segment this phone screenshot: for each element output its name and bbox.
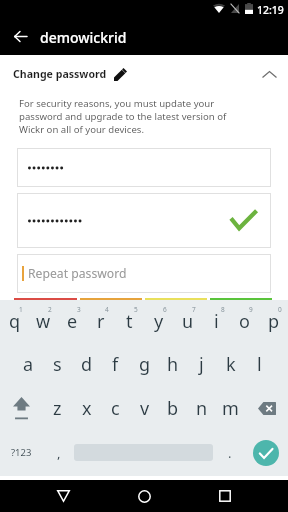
staticText: f [112, 352, 119, 377]
button[interactable]: v [130, 387, 159, 430]
button[interactable]: q [0, 300, 29, 343]
button[interactable] [17, 193, 271, 248]
staticText: 6 [163, 305, 167, 314]
button[interactable]: r [86, 300, 115, 343]
button[interactable]: Collapse section [250, 63, 288, 85]
staticText: i [214, 309, 219, 334]
staticText: r [97, 309, 105, 334]
button[interactable]: t [115, 300, 144, 343]
button[interactable]: a [14, 343, 43, 386]
button[interactable]: Back [3, 19, 37, 53]
staticText: 5 [134, 305, 138, 314]
button[interactable]: d [72, 343, 101, 386]
button[interactable]: l [245, 343, 274, 386]
button[interactable]: y [144, 300, 173, 343]
staticText: t [126, 309, 133, 334]
staticText: s [53, 352, 62, 377]
button[interactable]: o [230, 300, 259, 343]
button[interactable]: h [158, 343, 187, 386]
staticText: o [239, 309, 250, 334]
staticText: h [167, 352, 179, 377]
staticText: . [228, 444, 232, 462]
button[interactable]: Recents [193, 480, 257, 512]
staticText: 2 [48, 305, 52, 314]
button[interactable]: e [58, 300, 87, 343]
staticText: k [226, 352, 236, 377]
staticText: 1 [19, 305, 23, 314]
staticText: e [67, 309, 78, 334]
staticText: 0 [278, 305, 282, 314]
staticText: 12:19 [257, 3, 284, 17]
button[interactable]: ?123 [0, 431, 43, 474]
button[interactable]: f [101, 343, 130, 386]
staticText: Change password [13, 67, 107, 81]
button[interactable]: m [216, 387, 245, 430]
staticText: ?123 [11, 446, 32, 459]
staticText: demowickrid [40, 28, 127, 47]
button[interactable]: Shift [0, 387, 43, 430]
staticText: , [57, 444, 61, 462]
staticText: y [154, 309, 164, 334]
staticText: n [196, 396, 208, 421]
staticText: j [199, 352, 204, 377]
button[interactable]: Change password [0, 63, 288, 85]
staticText: For security reasons, you must update yo… [19, 97, 227, 136]
staticText: a [23, 352, 34, 377]
button[interactable]: j [187, 343, 216, 386]
button[interactable] [17, 148, 271, 187]
staticText: 8 [221, 305, 225, 314]
button[interactable]: x [72, 387, 101, 430]
button[interactable]: k [216, 343, 245, 386]
staticText: Repeat password [28, 265, 127, 282]
staticText: 9 [249, 305, 253, 314]
staticText: d [81, 352, 93, 377]
button[interactable]: i [202, 300, 231, 343]
button[interactable]: c [101, 387, 130, 430]
button[interactable]: z [43, 387, 72, 430]
staticText: u [182, 309, 194, 334]
button[interactable]: , [45, 431, 73, 474]
button[interactable]: n [187, 387, 216, 430]
staticText: 3 [77, 305, 81, 314]
button[interactable]: u [173, 300, 202, 343]
staticText: g [139, 352, 151, 377]
button[interactable]: Enter [253, 440, 279, 466]
button[interactable]: b [158, 387, 187, 430]
staticText: 4 [105, 305, 109, 314]
staticText: w [36, 309, 51, 334]
button[interactable]: Home [112, 480, 176, 512]
staticText: x [82, 396, 92, 421]
button[interactable]: w [29, 300, 58, 343]
button[interactable]: Back [31, 480, 95, 512]
button[interactable]: . [216, 431, 244, 474]
staticText: m [222, 396, 239, 421]
button[interactable]: s [43, 343, 72, 386]
staticText: q [9, 309, 21, 334]
staticText: v [140, 396, 150, 421]
button[interactable]: g [130, 343, 159, 386]
button[interactable]: Repeat password [17, 254, 271, 293]
staticText: c [111, 396, 120, 421]
staticText: z [53, 396, 62, 421]
staticText: p [268, 309, 280, 334]
staticText: l [257, 352, 262, 377]
button[interactable]: Backspace [245, 387, 288, 430]
staticText: b [167, 396, 179, 421]
staticText: 7 [192, 305, 196, 314]
button[interactable]: p [259, 300, 288, 343]
